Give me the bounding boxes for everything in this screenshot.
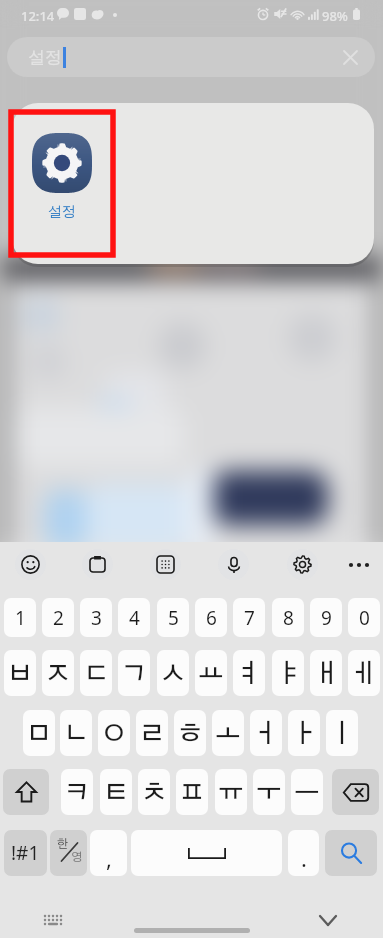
button[interactable]: 0 bbox=[348, 598, 380, 637]
button[interactable]: Shift bbox=[3, 769, 49, 815]
staticText: . bbox=[301, 843, 307, 873]
button[interactable]: Change language bbox=[50, 830, 87, 876]
staticText: 1 bbox=[15, 605, 26, 631]
staticText: ㅣ bbox=[329, 721, 355, 747]
staticText: 2 bbox=[53, 605, 64, 631]
button[interactable]: ㅔ bbox=[348, 650, 380, 696]
button[interactable]: ㅍ bbox=[176, 769, 208, 815]
staticText: ㅂ bbox=[7, 661, 33, 687]
button[interactable]: Keyboard tool bbox=[287, 549, 318, 580]
button[interactable]: ㅁ bbox=[23, 710, 55, 756]
staticText: ㅐ bbox=[313, 661, 339, 687]
button[interactable]: ㅏ bbox=[288, 710, 320, 756]
staticText: 4 bbox=[129, 605, 140, 631]
button[interactable]: 5 bbox=[157, 598, 189, 637]
button[interactable]: Hide keyboard bbox=[308, 900, 348, 938]
button[interactable]: More options bbox=[347, 553, 371, 577]
staticText: ㅛ bbox=[198, 661, 224, 687]
button[interactable]: ㅌ bbox=[100, 769, 132, 815]
staticText: ㄴ bbox=[63, 721, 89, 747]
button[interactable]: Search bbox=[325, 830, 377, 876]
staticText: 한 bbox=[57, 838, 69, 850]
staticText: 98% bbox=[322, 7, 348, 25]
staticText: 12:14 bbox=[21, 7, 55, 25]
button[interactable]: ㅋ bbox=[61, 769, 93, 815]
staticText: 0 bbox=[359, 605, 370, 631]
staticText: 6 bbox=[206, 605, 217, 631]
staticText: ㅋ bbox=[64, 780, 90, 806]
staticText: ㅏ bbox=[291, 721, 317, 747]
staticText: ㅜ bbox=[256, 780, 282, 806]
staticText: ㅓ bbox=[253, 721, 279, 747]
staticText: ㅅ bbox=[160, 661, 186, 687]
button[interactable]: ㅈ bbox=[42, 650, 74, 696]
staticText: ㄷ bbox=[83, 661, 109, 687]
staticText: ㅇ bbox=[101, 721, 127, 747]
staticText: !#1 bbox=[11, 840, 40, 866]
button[interactable]: 4 bbox=[118, 598, 150, 637]
staticText: 8 bbox=[283, 605, 294, 631]
button[interactable]: 9 bbox=[310, 598, 342, 637]
button[interactable]: 8 bbox=[272, 598, 304, 637]
staticText: , bbox=[106, 843, 112, 873]
staticText: ㅌ bbox=[103, 780, 129, 806]
button[interactable]: ㅜ bbox=[253, 769, 285, 815]
staticText: ㅁ bbox=[26, 721, 52, 747]
staticText: 7 bbox=[244, 605, 255, 631]
button[interactable]: ㅠ bbox=[215, 769, 247, 815]
button[interactable]: Change keyboard bbox=[33, 900, 73, 938]
button[interactable]: Comma bbox=[90, 830, 127, 876]
button[interactable]: ㄴ bbox=[60, 710, 92, 756]
staticText: ㅗ bbox=[215, 721, 241, 747]
button[interactable]: ㅅ bbox=[157, 650, 189, 696]
button[interactable]: ㄱ bbox=[118, 650, 150, 696]
button[interactable]: ㅡ bbox=[291, 769, 323, 815]
button[interactable]: Symbols bbox=[4, 830, 47, 876]
staticText: ㅑ bbox=[275, 661, 301, 687]
button[interactable]: ㄷ bbox=[80, 650, 112, 696]
button[interactable]: ㅑ bbox=[272, 650, 304, 696]
staticText: 9 bbox=[321, 605, 332, 631]
staticText: ㅊ bbox=[141, 780, 167, 806]
button[interactable]: ㅂ bbox=[4, 650, 36, 696]
staticText: 설정 bbox=[28, 47, 62, 68]
button[interactable]: Period bbox=[288, 830, 319, 876]
button[interactable]: ㅇ bbox=[98, 710, 130, 756]
staticText: ㅎ bbox=[177, 721, 203, 747]
button[interactable]: Keyboard tool bbox=[82, 549, 113, 580]
button[interactable]: ㅕ bbox=[233, 650, 265, 696]
button[interactable]: Backspace bbox=[332, 769, 379, 815]
staticText: ㅠ bbox=[218, 780, 244, 806]
button[interactable]: ㅣ bbox=[326, 710, 358, 756]
button[interactable]: 7 bbox=[233, 598, 265, 637]
staticText: ㄱ bbox=[121, 661, 147, 687]
staticText: ㅕ bbox=[236, 661, 262, 687]
staticText: ㅔ bbox=[351, 661, 377, 687]
button[interactable]: 6 bbox=[195, 598, 227, 637]
button[interactable]: Space bbox=[131, 830, 282, 876]
staticText: 설정 bbox=[48, 203, 76, 221]
button[interactable]: Keyboard tool bbox=[15, 549, 46, 580]
staticText: ㅡ bbox=[294, 780, 320, 806]
button[interactable]: ㅓ bbox=[250, 710, 282, 756]
staticText: 영 bbox=[71, 851, 83, 863]
button[interactable]: Keyboard tool bbox=[218, 549, 249, 580]
staticText: 5 bbox=[168, 605, 179, 631]
button[interactable]: ㅗ bbox=[212, 710, 244, 756]
staticText: ㄹ bbox=[139, 721, 165, 747]
staticText: ㅍ bbox=[179, 780, 205, 806]
button[interactable]: 설정 bbox=[7, 37, 375, 77]
button[interactable]: 1 bbox=[4, 598, 36, 637]
button[interactable]: 설정 bbox=[11, 112, 113, 255]
button[interactable]: ㅛ bbox=[195, 650, 227, 696]
button[interactable]: Clear bbox=[338, 45, 362, 69]
button[interactable]: ㅐ bbox=[310, 650, 342, 696]
staticText: ㅈ bbox=[45, 661, 71, 687]
staticText: 3 bbox=[91, 605, 102, 631]
button[interactable]: 2 bbox=[42, 598, 74, 637]
button[interactable]: ㄹ bbox=[136, 710, 168, 756]
button[interactable]: Keyboard tool bbox=[150, 549, 181, 580]
button[interactable]: 3 bbox=[80, 598, 112, 637]
button[interactable]: ㅎ bbox=[174, 710, 206, 756]
button[interactable]: ㅊ bbox=[138, 769, 170, 815]
